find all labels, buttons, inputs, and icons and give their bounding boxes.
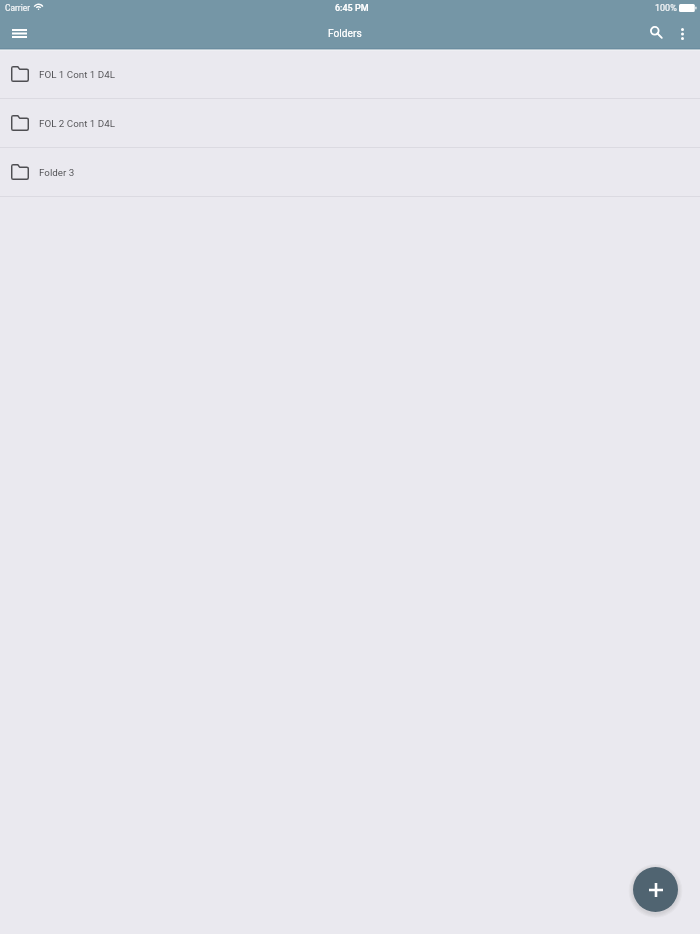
staticText: FOL 2 Cont 1 D4L (39, 118, 115, 129)
staticText: Carrier (5, 3, 31, 13)
button[interactable]: Navigation menu (2, 20, 37, 49)
button[interactable]: More options (672, 20, 692, 49)
button[interactable]: Search (644, 20, 670, 49)
staticText: FOL 1 Cont 1 D4L (39, 69, 115, 80)
button[interactable]: Add folder (633, 867, 678, 912)
staticText: Folder 3 (39, 167, 75, 178)
staticText: 100% (655, 3, 677, 14)
button[interactable]: FOL 1 Cont 1 D4L (0, 50, 700, 99)
staticText: 6:45 PM (335, 3, 369, 14)
button[interactable]: Folder 3 (0, 148, 700, 197)
staticText: Folders (328, 28, 362, 40)
button[interactable]: FOL 2 Cont 1 D4L (0, 99, 700, 148)
